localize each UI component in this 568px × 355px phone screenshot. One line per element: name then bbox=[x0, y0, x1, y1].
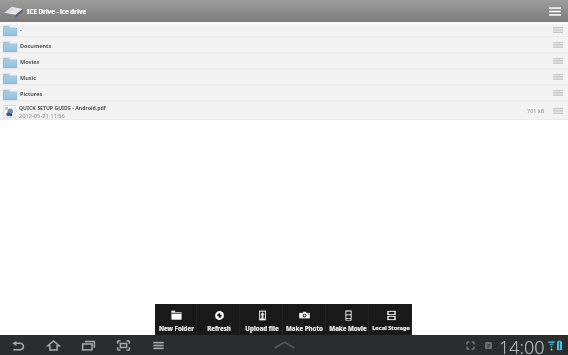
button[interactable]: Recent apps bbox=[80, 337, 96, 353]
staticText: ICE Drive - ice drive bbox=[27, 7, 87, 15]
button[interactable]: Refresh bbox=[197, 304, 240, 335]
button[interactable]: Item menu bbox=[551, 70, 565, 84]
button[interactable]: New Folder bbox=[155, 304, 197, 335]
staticText: Refresh bbox=[207, 324, 231, 332]
button[interactable]: Local Storage bbox=[369, 304, 412, 335]
button[interactable]: Item menu bbox=[551, 54, 565, 68]
button[interactable]: Music bbox=[0, 69, 568, 85]
button[interactable]: Menu bbox=[150, 337, 166, 353]
button[interactable]: Upload file bbox=[240, 304, 283, 335]
button[interactable]: Parking mode bbox=[485, 342, 492, 349]
button[interactable]: Home bbox=[45, 337, 61, 353]
staticText: 14:00 bbox=[499, 335, 545, 355]
button[interactable]: Expand bbox=[272, 337, 296, 353]
button[interactable]: - bbox=[0, 22, 568, 37]
staticText: 2012-05-21 11:56 bbox=[19, 112, 65, 120]
button[interactable]: Item menu bbox=[551, 86, 565, 100]
button[interactable]: Pictures bbox=[0, 85, 568, 101]
staticText: Pictures bbox=[20, 90, 43, 97]
staticText: Movies bbox=[20, 58, 40, 65]
button[interactable]: Item menu bbox=[551, 104, 565, 118]
button[interactable]: Back bbox=[10, 337, 26, 353]
staticText: 701 kB bbox=[527, 107, 545, 114]
staticText: Upload file bbox=[245, 324, 279, 332]
button[interactable]: Item menu bbox=[551, 23, 565, 37]
staticText: Local Storage bbox=[372, 324, 410, 332]
button[interactable]: Documents bbox=[0, 37, 568, 53]
button[interactable]: Movies bbox=[0, 53, 568, 69]
staticText: QUICK SETUP GUIDE - Android.pdf bbox=[19, 104, 106, 111]
button[interactable]: Screenshot bbox=[115, 337, 131, 353]
staticText: New Folder bbox=[159, 324, 194, 332]
button[interactable]: Menu bbox=[545, 1, 565, 21]
staticText: Make Movie bbox=[329, 324, 367, 332]
button[interactable]: Make Movie bbox=[326, 304, 369, 335]
button[interactable]: Fullscreen bbox=[463, 338, 477, 352]
staticText: Make Photo bbox=[286, 324, 323, 332]
button[interactable]: Item menu bbox=[551, 38, 565, 52]
staticText: P bbox=[487, 342, 491, 349]
staticText: Music bbox=[20, 74, 37, 81]
button[interactable]: QUICK SETUP GUIDE - Android.pdf bbox=[0, 101, 568, 120]
staticText: Documents bbox=[20, 42, 52, 49]
button[interactable]: Make Photo bbox=[283, 304, 326, 335]
staticText: - bbox=[20, 26, 22, 33]
